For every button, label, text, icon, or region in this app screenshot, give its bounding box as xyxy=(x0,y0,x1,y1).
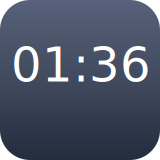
staticText: 01:36 xyxy=(11,37,151,93)
button[interactable]: 01:36 xyxy=(1,17,160,113)
